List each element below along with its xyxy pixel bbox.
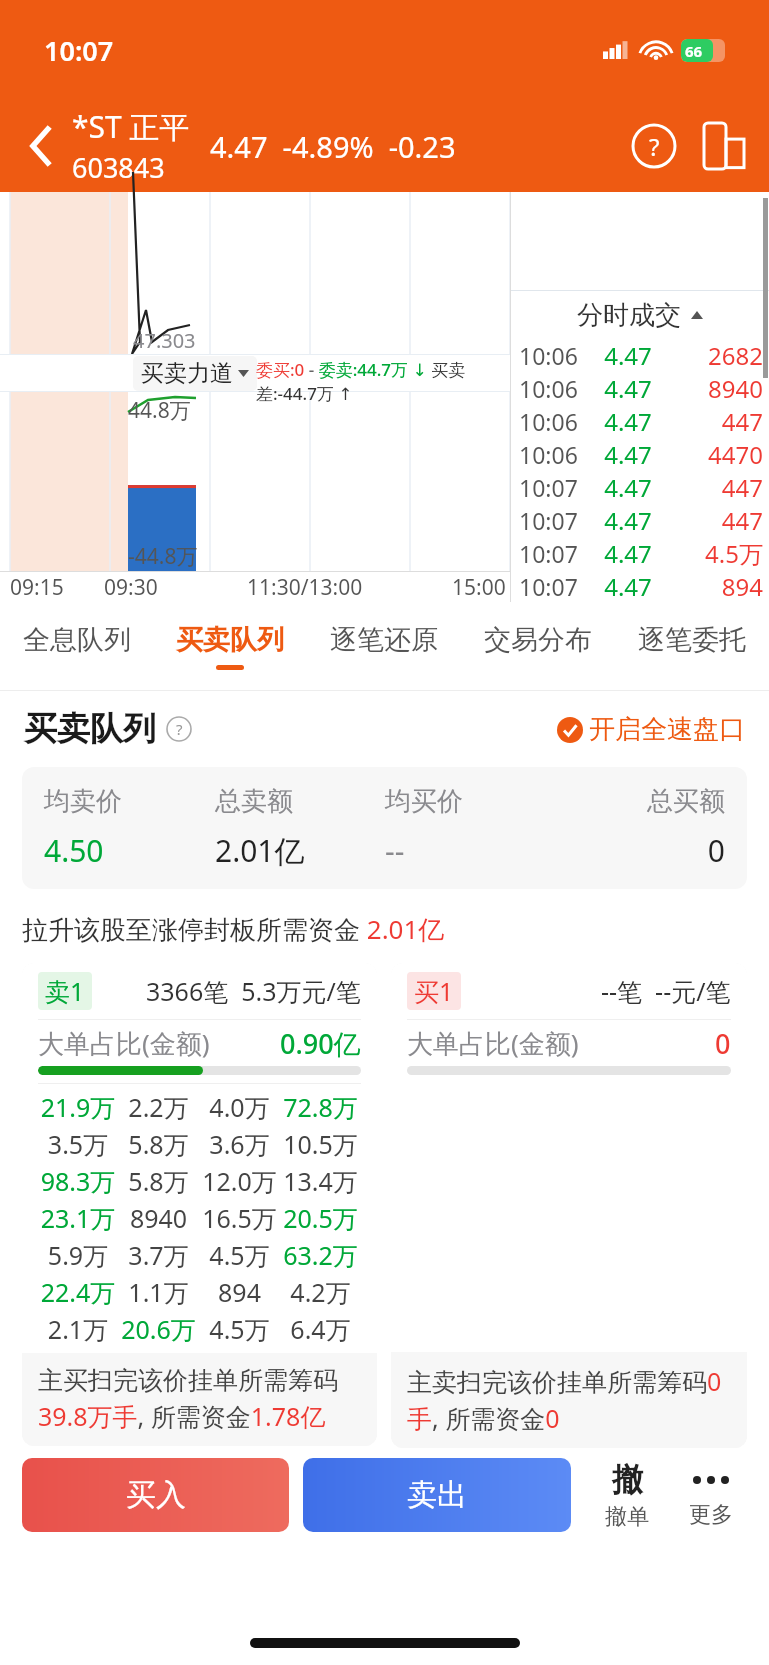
- staticText: 拉升该股至涨停封板所需资金 2.01亿: [22, 911, 445, 947]
- staticText: 894: [665, 570, 763, 602]
- staticText: 63.2万: [280, 1238, 361, 1272]
- staticText: 买入: [126, 1476, 186, 1514]
- staticText: 447: [665, 405, 763, 438]
- staticText: 0: [715, 1025, 731, 1062]
- staticText: 主买扫完该价挂单所需筹码 39.8万手, 所需资金1.78亿: [38, 1365, 338, 1434]
- button[interactable]: 卖出: [303, 1458, 571, 1532]
- staticText: 4.47: [591, 471, 665, 504]
- staticText: 4.47: [591, 537, 665, 570]
- staticText: 447: [665, 471, 763, 504]
- staticText: 10:06: [519, 373, 591, 404]
- button[interactable]: 逐笔委托: [615, 602, 769, 690]
- button[interactable]: 卖1: [22, 963, 377, 1446]
- staticText: 13.4万: [280, 1164, 361, 1198]
- staticText: 09:30: [104, 573, 158, 602]
- staticText: 全息队列: [23, 623, 131, 657]
- staticText: 2682: [665, 339, 763, 372]
- staticText: 逐笔委托: [638, 623, 746, 657]
- staticText: 8940: [118, 1201, 199, 1235]
- staticText: 买1: [414, 974, 454, 1008]
- button[interactable]: 撤: [585, 1460, 669, 1531]
- staticText: 4.47: [591, 339, 665, 372]
- staticText: 大单占比(金额): [407, 1025, 579, 1061]
- staticText: 10.5万: [280, 1127, 361, 1161]
- staticText: 更多: [689, 1501, 733, 1529]
- staticText: 2.1万: [38, 1312, 118, 1346]
- staticText: 11:30/13:00: [247, 573, 363, 602]
- staticText: 4.5万: [665, 537, 763, 570]
- button[interactable]: 交易分布: [461, 602, 615, 690]
- staticText: 4.47: [591, 372, 665, 405]
- staticText: 44.8万: [128, 396, 191, 425]
- staticText: 4.47: [591, 570, 665, 602]
- staticText: 总卖额: [215, 785, 385, 818]
- staticText: 3.6万: [199, 1127, 280, 1161]
- staticText: 卖出: [407, 1476, 467, 1514]
- staticText: 3.7万: [118, 1238, 199, 1272]
- staticText: 买卖力道: [141, 359, 233, 388]
- staticText: 1.1万: [118, 1275, 199, 1309]
- button[interactable]: 全息队列: [0, 602, 153, 690]
- staticText: 撤: [612, 1460, 643, 1499]
- staticText: 0: [555, 830, 725, 871]
- staticText: 4.50: [44, 830, 215, 871]
- staticText: 委买:0 - 委卖:44.7万 ↓ 买卖差:-44.7万 ↑: [256, 358, 510, 405]
- staticText: 20.6万: [118, 1312, 199, 1346]
- button[interactable]: Screenshot: [697, 119, 751, 173]
- button[interactable]: 逐笔还原: [307, 602, 461, 690]
- staticText: 6.4万: [280, 1312, 361, 1346]
- staticText: 22.4万: [38, 1275, 118, 1309]
- staticText: *ST 正平: [72, 106, 190, 147]
- staticText: 分时成交: [577, 299, 681, 332]
- staticText: 买卖队列: [24, 708, 156, 750]
- staticText: 0.90亿: [280, 1025, 361, 1062]
- staticText: 894: [199, 1275, 280, 1309]
- staticText: 买卖队列: [176, 623, 284, 657]
- staticText: 均卖价: [44, 785, 215, 818]
- staticText: 10:07: [44, 32, 114, 69]
- staticText: 4470: [665, 438, 763, 471]
- staticText: 4.0万: [199, 1090, 280, 1124]
- staticText: 开启全速盘口: [589, 713, 745, 746]
- button[interactable]: 买卖力道: [133, 356, 257, 391]
- staticText: 4.47: [591, 504, 665, 537]
- button[interactable]: Back: [14, 118, 70, 174]
- staticText: 3.5万: [38, 1127, 118, 1161]
- staticText: 5.9万: [38, 1238, 118, 1272]
- staticText: 总买额: [555, 785, 725, 818]
- button[interactable]: 买1: [391, 963, 747, 1448]
- staticText: 5.8万: [118, 1164, 199, 1198]
- staticText: 4.47: [591, 405, 665, 438]
- staticText: --笔 --元/笔: [601, 974, 731, 1008]
- staticText: 23.1万: [38, 1201, 118, 1235]
- staticText: 撤单: [605, 1503, 649, 1531]
- staticText: 4.47 -4.89% -0.23: [210, 127, 456, 166]
- staticText: 卖1: [45, 974, 85, 1008]
- staticText: 10:06: [519, 340, 591, 371]
- button[interactable]: 买入: [22, 1458, 289, 1532]
- button[interactable]: Info: [166, 716, 192, 742]
- staticText: 4.2万: [280, 1275, 361, 1309]
- staticText: --: [385, 830, 555, 871]
- staticText: 10:06: [519, 439, 591, 470]
- staticText: 15:00: [452, 573, 506, 602]
- staticText: 均买价: [385, 785, 555, 818]
- staticText: 10:07: [519, 538, 591, 569]
- button[interactable]: 买卖队列: [153, 602, 307, 690]
- staticText: 21.9万: [38, 1090, 118, 1124]
- button[interactable]: More: [669, 1461, 753, 1529]
- button[interactable]: Help: [627, 119, 681, 173]
- staticText: 603843: [72, 149, 165, 186]
- staticText: ?: [649, 130, 660, 163]
- staticText: 主卖扫完该价挂单所需筹码0 手, 所需资金0: [407, 1364, 722, 1436]
- staticText: 12.0万: [199, 1164, 280, 1198]
- staticText: 47.303: [133, 327, 196, 354]
- button[interactable]: 分时成交: [511, 291, 769, 339]
- staticText: 10:07: [519, 505, 591, 536]
- staticText: 72.8万: [280, 1090, 361, 1124]
- button[interactable]: 开启全速盘口: [557, 713, 745, 746]
- staticText: 2.01亿: [215, 830, 385, 871]
- staticText: 20.5万: [280, 1201, 361, 1235]
- staticText: 4.47: [591, 438, 665, 471]
- staticText: 10:06: [519, 406, 591, 437]
